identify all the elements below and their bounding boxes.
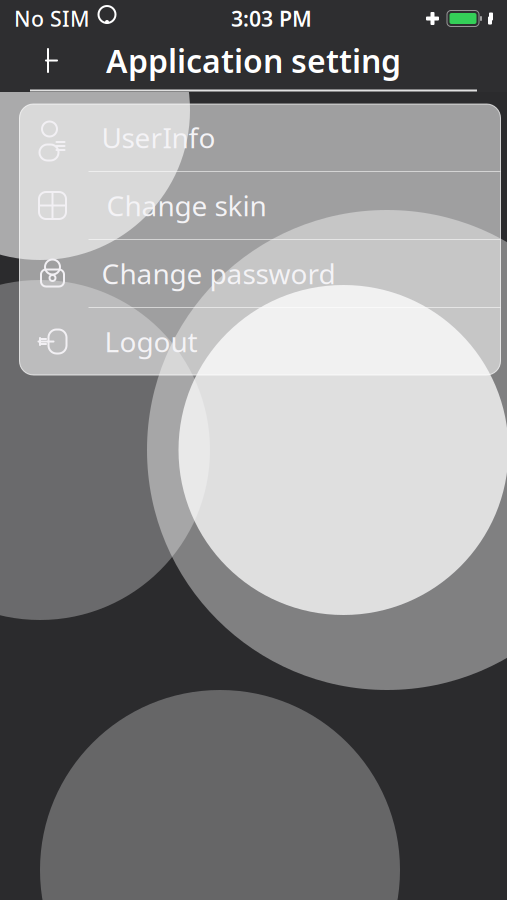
button[interactable]: Back [27, 37, 73, 83]
button[interactable]: Logout [19, 308, 500, 375]
staticText: Change password [101, 255, 335, 292]
button[interactable]: Change password [19, 240, 500, 307]
staticText: Change skin [106, 187, 266, 224]
button[interactable]: UserInfo [19, 104, 500, 171]
staticText: UserInfo [101, 119, 215, 156]
staticText: No SIM [14, 4, 90, 33]
button[interactable]: Change skin [19, 172, 500, 239]
staticText: Logout [104, 323, 197, 360]
staticText: Application setting [106, 39, 401, 82]
staticText: 3:03 PM [231, 4, 312, 33]
